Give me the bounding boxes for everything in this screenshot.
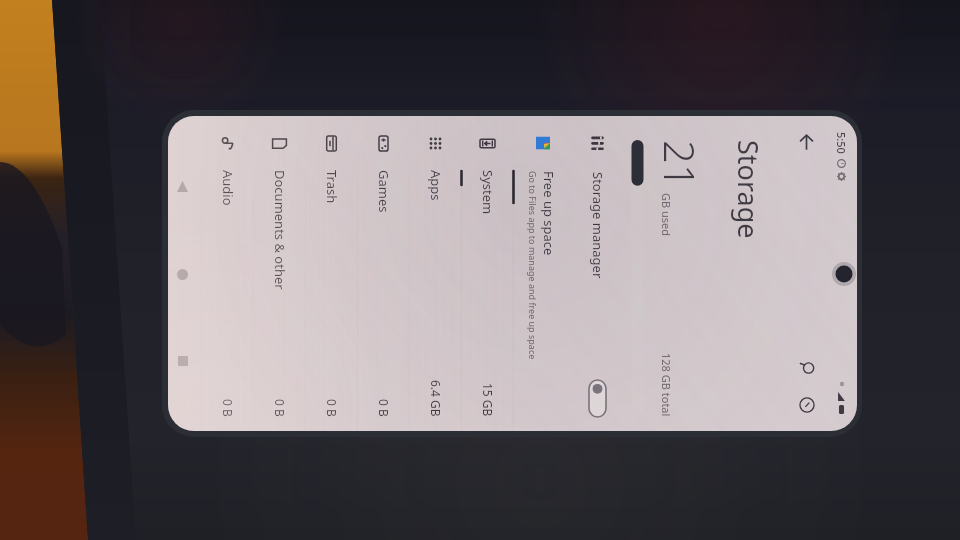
- staticText: 128 GB total: [659, 353, 674, 417]
- button[interactable]: Home: [168, 256, 198, 292]
- button[interactable]: Back: [168, 168, 198, 204]
- staticText: 0 B: [220, 399, 236, 417]
- staticText: Storage manager: [589, 172, 607, 279]
- staticText: System: [479, 170, 497, 215]
- staticText: GB used: [659, 193, 674, 237]
- button[interactable]: Documents & other: [254, 116, 306, 431]
- button[interactable]: Back: [789, 124, 825, 160]
- staticText: 0 B: [376, 399, 392, 417]
- staticText: 6.4 GB: [428, 380, 444, 417]
- button[interactable]: Trash: [306, 116, 358, 431]
- button[interactable]: Help: [789, 387, 825, 423]
- staticText: Apps: [427, 170, 445, 201]
- staticText: Audio: [219, 170, 237, 206]
- staticText: 21: [652, 140, 709, 188]
- staticText: Go to Files app to manage and free up sp…: [527, 171, 539, 360]
- staticText: Free up space: [540, 171, 558, 256]
- button[interactable]: Search: [789, 351, 825, 387]
- staticText: Documents & other: [271, 170, 289, 290]
- staticText: Games: [375, 170, 393, 213]
- button[interactable]: Storage manager: [572, 116, 624, 431]
- button[interactable]: Free up space: [514, 116, 572, 431]
- staticText: Trash: [323, 170, 341, 204]
- staticText: 5:50: [834, 132, 849, 154]
- button[interactable]: System: [462, 116, 514, 431]
- button[interactable]: Recent apps: [168, 343, 198, 379]
- button[interactable]: Games: [358, 116, 410, 431]
- staticText: Storage: [730, 140, 767, 239]
- button[interactable]: Apps: [410, 116, 462, 431]
- staticText: 0 B: [272, 399, 288, 417]
- button[interactable]: Audio: [202, 116, 254, 431]
- staticText: 15 GB: [480, 383, 496, 417]
- staticText: 0 B: [324, 399, 340, 417]
